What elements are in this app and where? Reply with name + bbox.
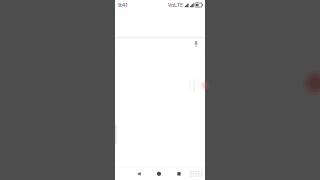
staticText: 9:41: [118, 1, 128, 9]
button[interactable]: Back: [129, 168, 149, 180]
button[interactable]: Search: [115, 36, 205, 49]
staticText: VoLTE: [168, 1, 183, 9]
button[interactable]: Recents: [169, 168, 189, 180]
button[interactable]: Home: [149, 168, 169, 180]
